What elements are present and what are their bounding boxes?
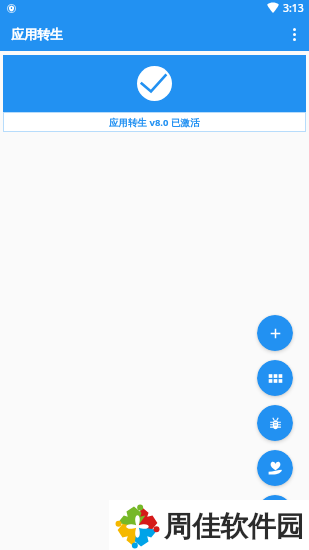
button[interactable]: 应用转生 v8.0 已激活 <box>3 55 306 132</box>
button[interactable]: All apps <box>257 360 293 396</box>
staticText: 3:13 <box>283 1 304 15</box>
button[interactable]: Add <box>257 315 293 351</box>
button[interactable]: More options <box>279 17 309 51</box>
button[interactable]: Donate <box>257 450 293 486</box>
button[interactable]: Settings <box>257 495 293 531</box>
staticText: 周佳软件园 <box>164 509 304 544</box>
staticText: 应用转生 <box>11 26 63 42</box>
button[interactable]: Debug <box>257 405 293 441</box>
staticText: 应用转生 v8.0 已激活 <box>109 116 200 129</box>
